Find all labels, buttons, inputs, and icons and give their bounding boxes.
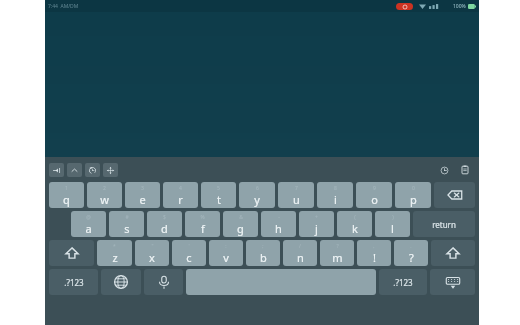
staticText: 100% (453, 3, 466, 10)
button[interactable]: @ (71, 211, 106, 237)
button[interactable]: Voice input (144, 269, 183, 295)
button[interactable]: return (413, 211, 475, 237)
button[interactable]: $ (147, 211, 182, 237)
staticText: .?123 (64, 277, 84, 288)
staticText: ) (392, 214, 394, 221)
staticText: u (293, 192, 300, 207)
button[interactable]: 1 (49, 182, 84, 208)
staticText: 3 (141, 185, 144, 192)
button[interactable]: .?123 (379, 269, 427, 295)
staticText: & (239, 214, 243, 221)
staticText: + (315, 214, 318, 221)
button[interactable]: Expand (67, 163, 82, 177)
staticText: return (432, 219, 456, 230)
button[interactable]: 8 (317, 182, 353, 208)
button[interactable]: Backspace (434, 182, 475, 208)
staticText: s (124, 221, 130, 236)
button[interactable]: ) (375, 211, 410, 237)
button[interactable]: 0 (395, 182, 431, 208)
button[interactable]: History (85, 163, 100, 177)
staticText: k (352, 221, 358, 236)
button[interactable]: , (357, 240, 391, 266)
button[interactable]: Settings (437, 163, 451, 177)
button[interactable]: 9 (356, 182, 392, 208)
staticText: @ (86, 214, 91, 221)
staticText: e (139, 192, 146, 207)
staticText: 1 (65, 185, 68, 192)
staticText: t (217, 192, 221, 207)
staticText: w (100, 192, 109, 207)
staticText: 5 (217, 185, 220, 192)
staticText: m (332, 250, 343, 265)
button[interactable]: Tab (49, 163, 64, 177)
staticText: / (299, 243, 301, 250)
staticText: o (371, 192, 378, 207)
staticText: b (260, 250, 267, 265)
staticText: g (237, 221, 244, 236)
button[interactable]: 4 (163, 182, 198, 208)
staticText: f (201, 221, 205, 236)
button[interactable]: & (223, 211, 258, 237)
staticText: ; (262, 243, 264, 250)
button[interactable]: Move cursor (103, 163, 118, 177)
button[interactable]: ? (320, 240, 354, 266)
button[interactable]: .?123 (49, 269, 98, 295)
button[interactable]: + (299, 211, 334, 237)
button[interactable]: - (261, 211, 296, 237)
button[interactable]: ' (172, 240, 206, 266)
button[interactable]: : (209, 240, 243, 266)
button[interactable]: Shift (49, 240, 94, 266)
button[interactable]: . (394, 240, 428, 266)
staticText: v (223, 250, 229, 265)
staticText: n (297, 250, 304, 265)
staticText: r (178, 192, 183, 207)
button[interactable]: 2 (87, 182, 122, 208)
button[interactable]: 6 (239, 182, 275, 208)
staticText: 9 (373, 185, 376, 192)
staticText: ( (354, 214, 356, 221)
staticText: y (254, 192, 260, 207)
button[interactable]: % (185, 211, 220, 237)
staticText: c (186, 250, 192, 265)
button[interactable]: # (109, 211, 144, 237)
button[interactable]: ; (246, 240, 280, 266)
staticText: 2 (103, 185, 106, 192)
staticText: p (410, 192, 417, 207)
staticText: i (334, 192, 337, 207)
staticText: 8 (334, 185, 337, 192)
button[interactable]: / (283, 240, 317, 266)
staticText: l (391, 221, 394, 236)
staticText: # (125, 214, 129, 221)
button[interactable]: * (97, 240, 132, 266)
staticText: a (85, 221, 92, 236)
staticText: 6 (256, 185, 259, 192)
staticText: q (63, 192, 70, 207)
button[interactable]: " (135, 240, 169, 266)
button[interactable]: ( (337, 211, 372, 237)
staticText: 7:44 AM/DM (48, 3, 79, 10)
staticText: h (275, 221, 282, 236)
staticText: ? (336, 243, 339, 250)
button[interactable]: Clipboard (458, 163, 472, 177)
button[interactable]: 3 (125, 182, 160, 208)
button[interactable]: 7 (278, 182, 314, 208)
staticText: * (113, 243, 116, 250)
button[interactable]: Shift (431, 240, 475, 266)
staticText: d (161, 221, 168, 236)
staticText: % (200, 214, 205, 221)
staticText: z (112, 250, 118, 265)
staticText: x (149, 250, 155, 265)
button[interactable]: Hide keyboard (430, 269, 475, 295)
button[interactable]: Change keyboard (101, 269, 141, 295)
staticText: 7 (295, 185, 298, 192)
staticText: j (315, 221, 318, 236)
button[interactable]: 5 (201, 182, 236, 208)
staticText: 0 (412, 185, 415, 192)
